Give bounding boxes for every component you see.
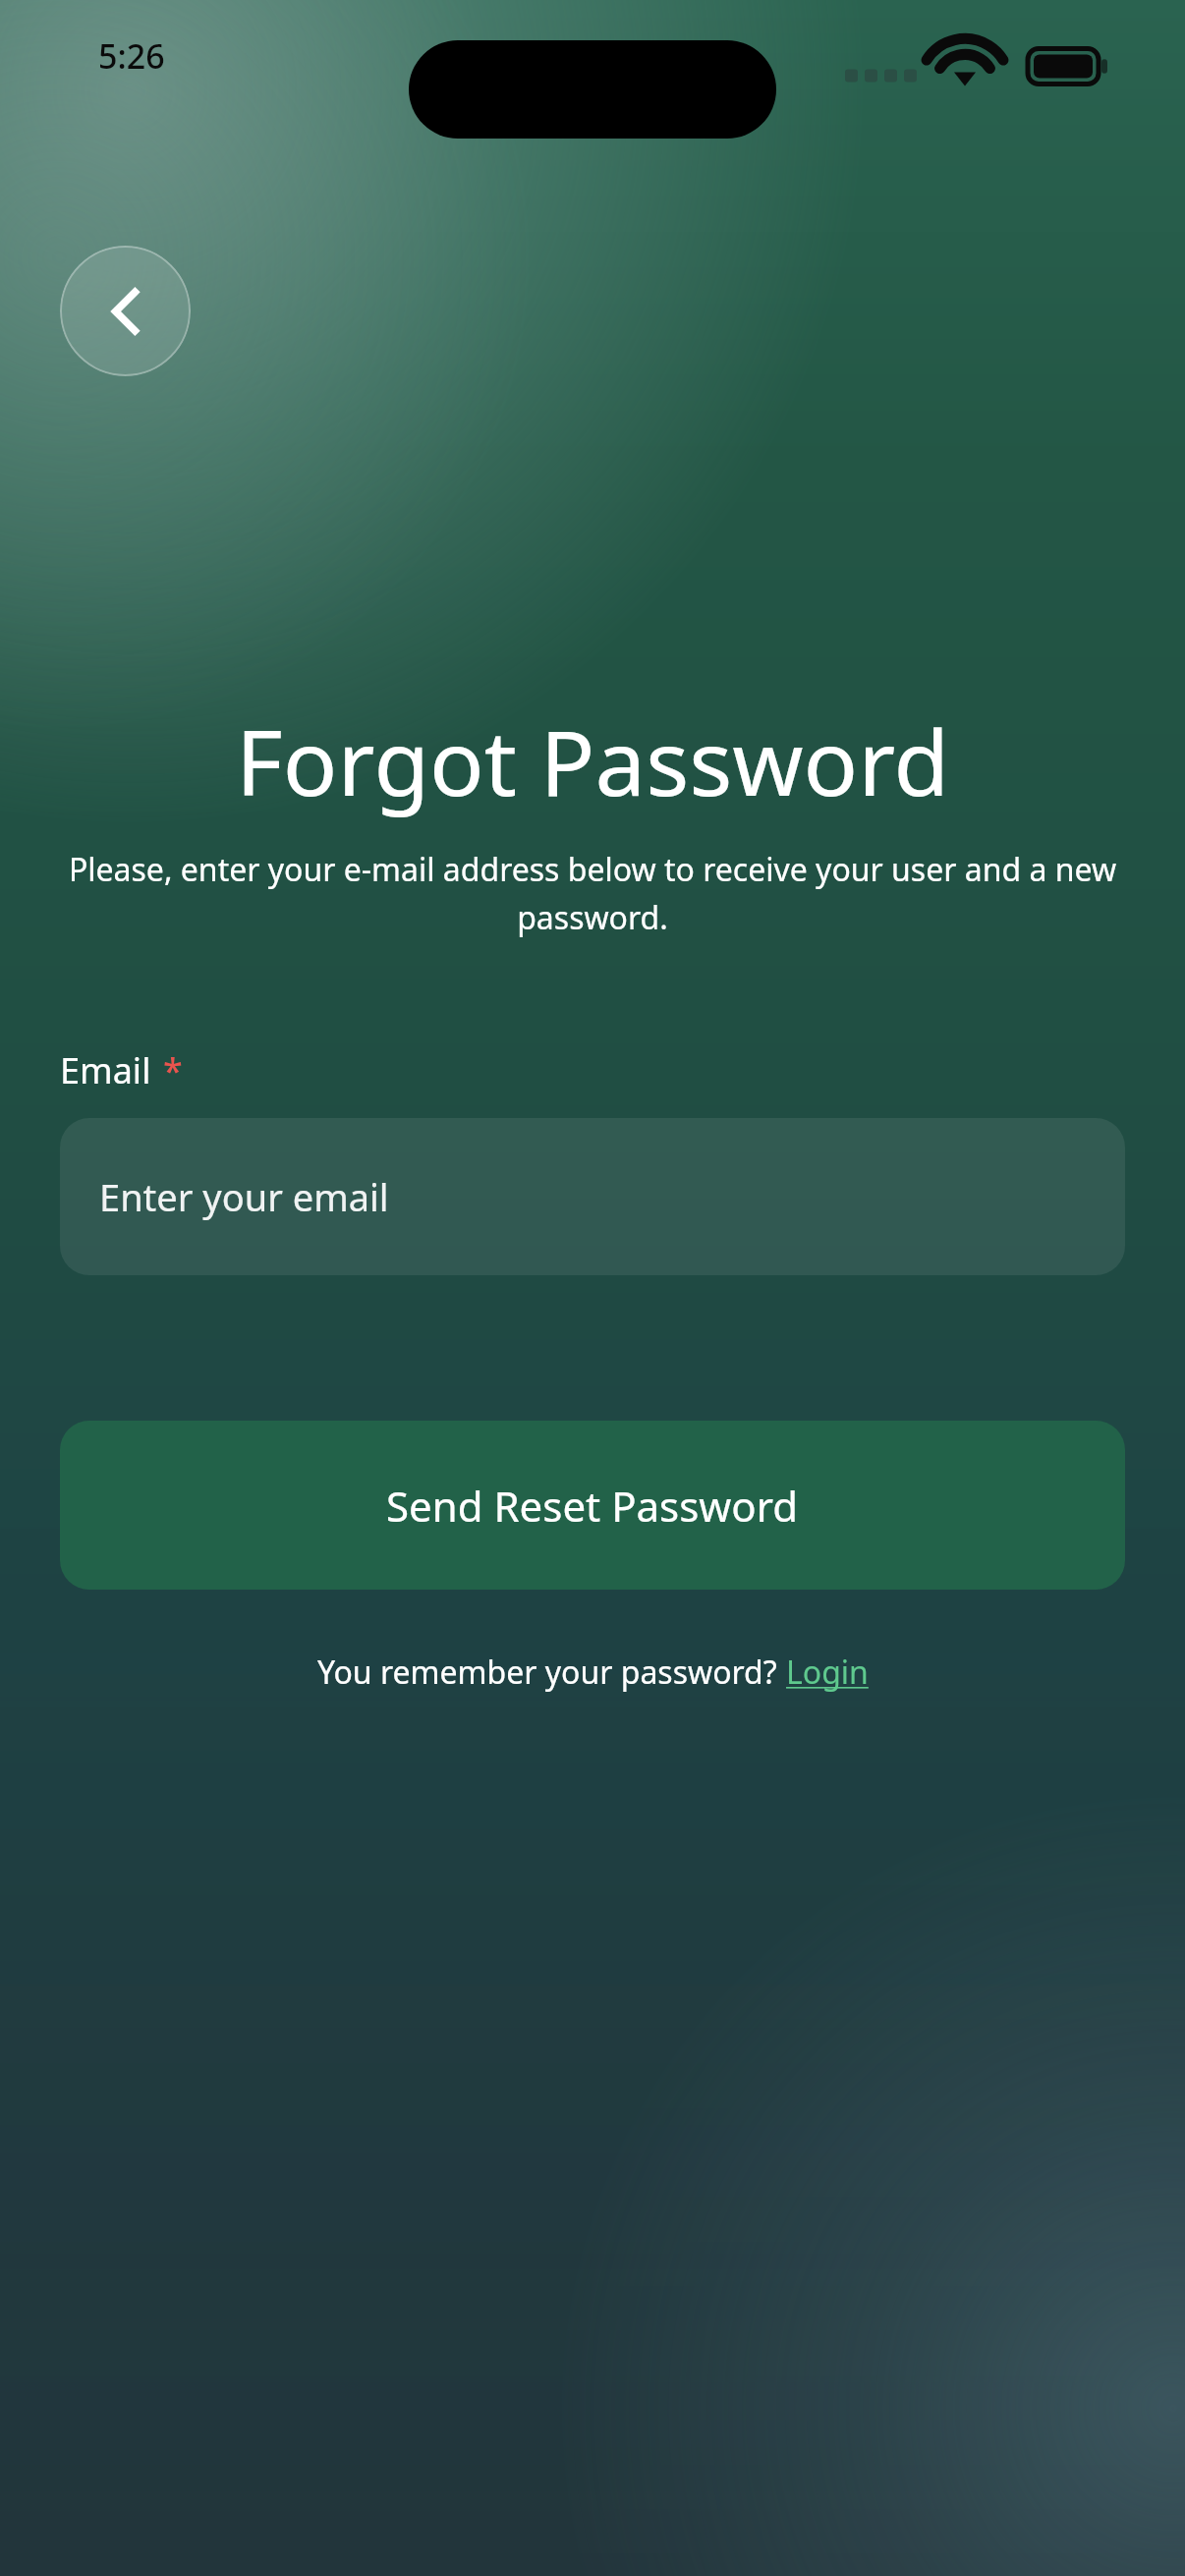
staticText: Email — [60, 1046, 151, 1094]
button[interactable]: Login — [786, 1651, 869, 1694]
button[interactable]: Back — [60, 246, 191, 376]
staticText: * — [163, 1046, 183, 1094]
button[interactable]: Enter your email — [60, 1118, 1125, 1275]
staticText: Please, enter your e-mail address below … — [60, 848, 1125, 938]
staticText: You remember your password? — [317, 1651, 786, 1694]
staticText: Forgot Password — [60, 700, 1125, 822]
button[interactable]: Send Reset Password — [60, 1421, 1125, 1590]
staticText: Login — [786, 1651, 869, 1694]
staticText: 5:26 — [98, 33, 165, 79]
staticText: Enter your email — [99, 1171, 389, 1222]
staticText: Send Reset Password — [386, 1478, 799, 1534]
